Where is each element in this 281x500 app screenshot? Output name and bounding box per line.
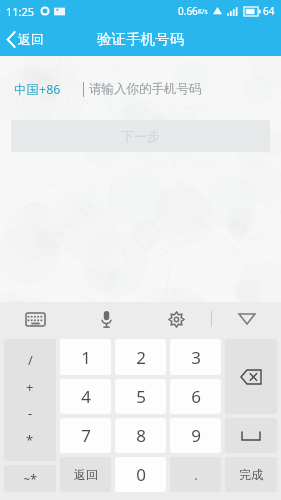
button[interactable]: 2 bbox=[115, 339, 166, 375]
button[interactable]: 0 bbox=[115, 457, 166, 492]
button[interactable]: 中国+86 bbox=[14, 77, 61, 102]
button[interactable]: 9 bbox=[170, 418, 221, 453]
button[interactable]: Switch keyboard bbox=[0, 302, 71, 336]
button[interactable]: 7 bbox=[60, 418, 111, 453]
staticText: 0.66 bbox=[178, 4, 198, 18]
staticText: 0 bbox=[136, 463, 146, 486]
button[interactable]: Backspace bbox=[225, 339, 277, 414]
staticText: 中国+86 bbox=[14, 81, 61, 98]
staticText: 7 bbox=[81, 424, 91, 447]
staticText: 返回 bbox=[74, 467, 98, 482]
staticText: 5 bbox=[136, 385, 146, 408]
staticText: 请输入你的手机号码 bbox=[89, 81, 202, 97]
button[interactable]: ~* bbox=[4, 465, 56, 492]
button[interactable]: Voice input bbox=[71, 302, 141, 336]
staticText: 验证手机号码 bbox=[97, 30, 184, 48]
button[interactable]: / bbox=[4, 339, 56, 461]
staticText: / bbox=[28, 351, 33, 369]
staticText: . bbox=[194, 466, 198, 484]
button[interactable]: 5 bbox=[115, 379, 166, 414]
button[interactable]: Space bbox=[225, 418, 277, 453]
button[interactable]: 4 bbox=[60, 379, 111, 414]
button[interactable]: 请输入你的手机号码 bbox=[89, 81, 267, 97]
button[interactable]: 3 bbox=[170, 339, 221, 375]
staticText: 4 bbox=[81, 385, 91, 408]
staticText: 下一步 bbox=[121, 128, 160, 144]
staticText: K/s bbox=[198, 7, 208, 16]
staticText: 8 bbox=[136, 424, 146, 447]
button[interactable]: 完成 bbox=[225, 457, 277, 492]
button[interactable]: 返回 bbox=[60, 457, 111, 492]
staticText: * bbox=[26, 431, 34, 449]
button[interactable]: . bbox=[170, 457, 221, 492]
staticText: 返回 bbox=[18, 31, 44, 47]
button[interactable]: 1 bbox=[60, 339, 111, 375]
staticText: 64 bbox=[263, 4, 275, 18]
staticText: 2 bbox=[136, 346, 146, 369]
staticText: 3 bbox=[191, 346, 201, 369]
staticText: + bbox=[26, 378, 34, 396]
button[interactable]: Hide keyboard bbox=[212, 302, 281, 336]
staticText: 1 bbox=[81, 346, 91, 369]
staticText: 6 bbox=[191, 385, 201, 408]
button[interactable]: Keyboard settings bbox=[141, 302, 211, 336]
staticText: ~* bbox=[23, 471, 37, 487]
button[interactable]: 返回 bbox=[0, 27, 54, 51]
button[interactable]: 8 bbox=[115, 418, 166, 453]
staticText: - bbox=[28, 404, 33, 422]
staticText: 9 bbox=[191, 424, 201, 447]
staticText: 11:25 bbox=[6, 4, 35, 19]
staticText: 完成 bbox=[239, 467, 263, 482]
button[interactable]: 6 bbox=[170, 379, 221, 414]
